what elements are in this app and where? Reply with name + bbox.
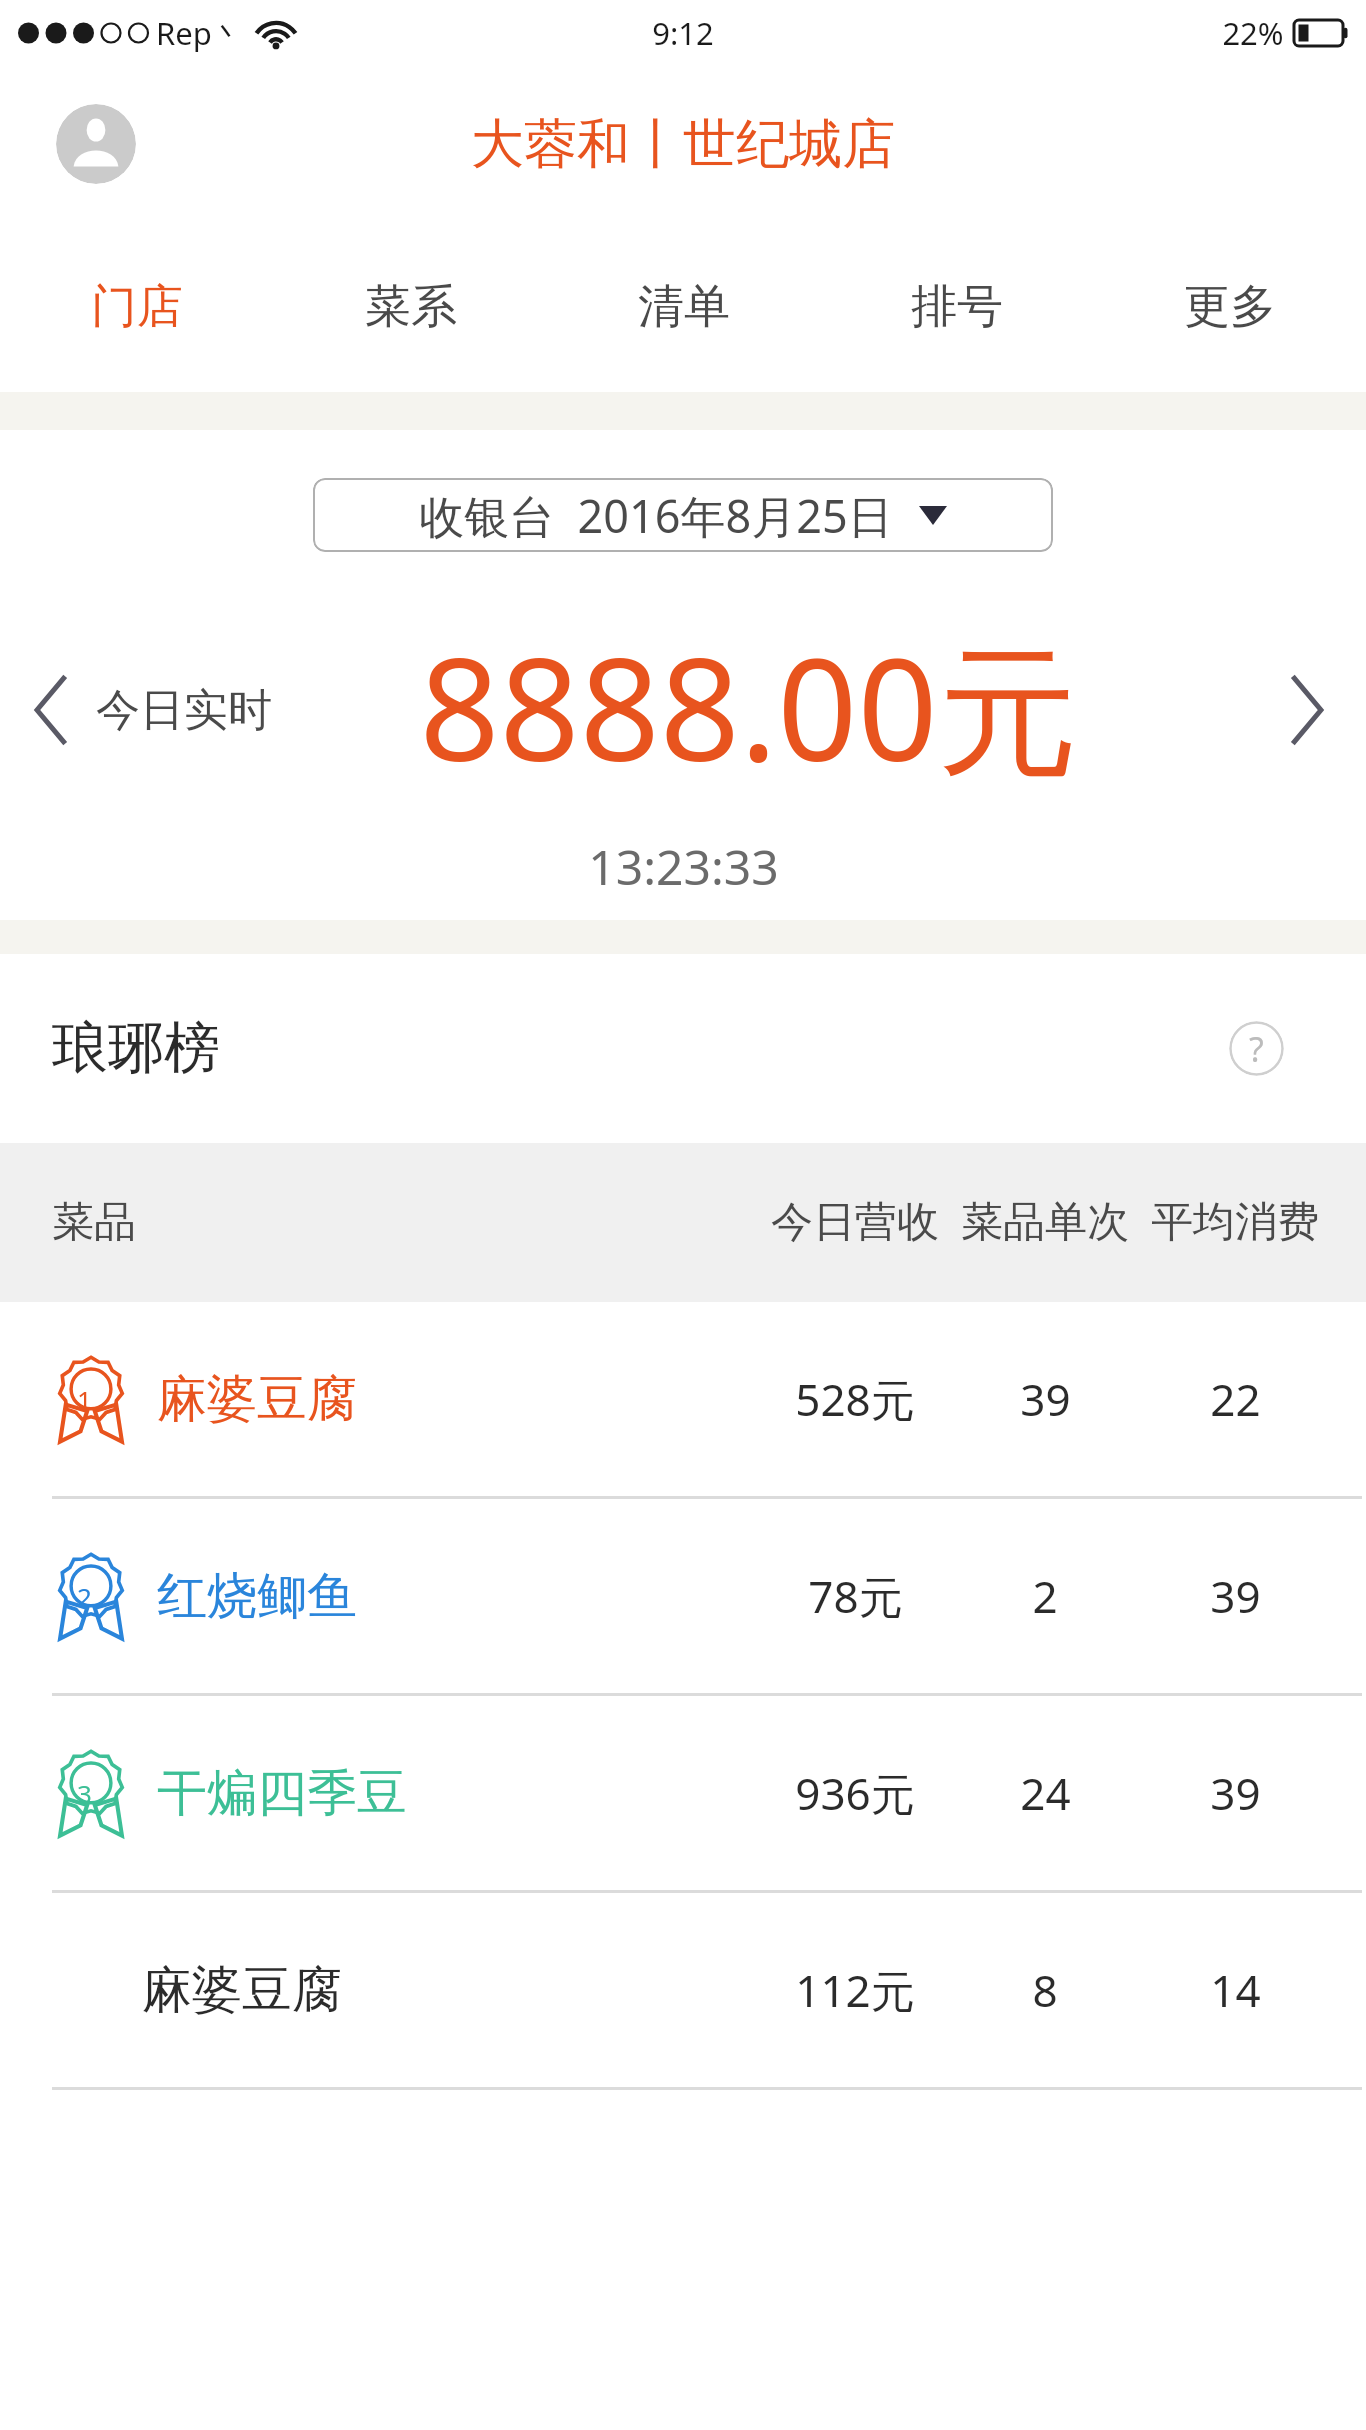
- staticText: 收银台 2016年8月25日: [419, 485, 893, 546]
- staticText: 麻婆豆腐: [157, 1368, 357, 1431]
- button[interactable]: Next: [1284, 671, 1328, 749]
- staticText: 清单: [638, 278, 730, 336]
- staticText: Rep丶: [156, 12, 243, 54]
- button[interactable]: 排号: [820, 222, 1093, 392]
- staticText: 22: [1210, 1369, 1261, 1429]
- staticText: 22%: [1222, 12, 1284, 54]
- staticText: 今日实时: [96, 683, 272, 738]
- staticText: 8888.00元: [419, 611, 1078, 802]
- button[interactable]: 清单: [547, 222, 820, 392]
- staticText: 78元: [808, 1566, 903, 1626]
- staticText: 1: [77, 1382, 92, 1417]
- staticText: 9:12: [652, 12, 714, 54]
- staticText: 菜品: [52, 1196, 136, 1249]
- button[interactable]: 2: [0, 1499, 1366, 1693]
- staticText: 2: [77, 1579, 92, 1614]
- staticText: 528元: [795, 1369, 915, 1429]
- staticText: 39: [1020, 1369, 1071, 1429]
- button[interactable]: Previous: [30, 671, 272, 749]
- staticText: 琅琊榜: [52, 1013, 220, 1084]
- staticText: 更多: [1184, 278, 1276, 336]
- button[interactable]: 1: [0, 1302, 1366, 1496]
- button[interactable]: Profile: [56, 104, 136, 184]
- staticText: 排号: [911, 278, 1003, 336]
- staticText: 麻婆豆腐: [142, 1959, 342, 2022]
- staticText: 菜系: [365, 278, 457, 336]
- staticText: 39: [1210, 1566, 1261, 1626]
- staticText: 13:23:33: [588, 834, 779, 899]
- staticText: 红烧鲫鱼: [157, 1565, 357, 1628]
- button[interactable]: Help: [1229, 1021, 1284, 1076]
- staticText: 干煸四季豆: [157, 1762, 407, 1825]
- staticText: 8: [1032, 1960, 1058, 2020]
- staticText: 2: [1032, 1566, 1058, 1626]
- staticText: 936元: [795, 1763, 915, 1823]
- button[interactable]: 3: [0, 1696, 1366, 1890]
- staticText: 今日营收: [771, 1196, 939, 1249]
- staticText: 大蓉和丨世纪城店: [471, 111, 895, 178]
- staticText: 39: [1210, 1763, 1261, 1823]
- button[interactable]: 更多: [1093, 222, 1366, 392]
- button[interactable]: 麻婆豆腐: [0, 1893, 1366, 2087]
- staticText: 3: [77, 1776, 92, 1811]
- staticText: 24: [1020, 1763, 1071, 1823]
- button[interactable]: 收银台 2016年8月25日: [313, 478, 1053, 552]
- staticText: 平均消费: [1151, 1196, 1319, 1249]
- staticText: 门店: [91, 278, 183, 336]
- staticText: 菜品单次: [961, 1196, 1129, 1249]
- staticText: 112元: [795, 1960, 915, 2020]
- staticText: 14: [1210, 1960, 1261, 2020]
- button[interactable]: 门店: [0, 222, 274, 392]
- button[interactable]: 菜系: [274, 222, 547, 392]
- staticText: ?: [1249, 1026, 1264, 1072]
